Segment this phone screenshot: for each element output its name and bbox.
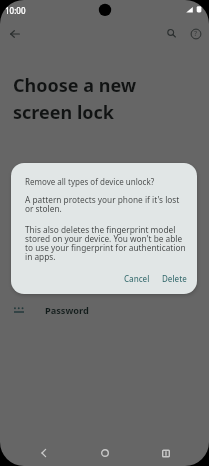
button[interactable]: Password: [0, 296, 209, 324]
staticText: Remove all types of device unlock?: [25, 176, 155, 187]
staticText: 10:00: [5, 5, 26, 16]
staticText: Delete: [162, 273, 187, 284]
button[interactable]: Recent apps: [146, 440, 186, 466]
button[interactable]: Search: [159, 21, 185, 47]
button[interactable]: Home: [85, 440, 125, 466]
staticText: Cancel: [124, 273, 150, 284]
staticText: Choose a new screen lock: [13, 73, 137, 124]
button[interactable]: Cancel: [118, 270, 156, 287]
button[interactable]: Back: [24, 440, 64, 466]
staticText: Password: [45, 304, 89, 317]
staticText: This also deletes the fingerprint model …: [25, 224, 187, 262]
button[interactable]: Delete: [156, 270, 187, 287]
staticText: A pattern protects your phone if it's lo…: [25, 194, 187, 214]
button[interactable]: Back: [2, 21, 28, 47]
button[interactable]: Help: [183, 21, 209, 47]
staticText: ?: [194, 29, 198, 39]
